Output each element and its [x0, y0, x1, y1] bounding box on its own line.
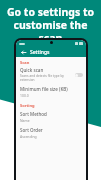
staticText: Minimum file size (KB) — [20, 86, 68, 92]
staticText: Ascending — [20, 134, 37, 139]
button[interactable]: Back — [19, 48, 27, 56]
button[interactable]: Minimum file size (KB) — [16, 84, 86, 100]
staticText: Sort Order — [20, 127, 43, 133]
staticText: Settings — [30, 49, 50, 56]
staticText: Sorting — [20, 103, 35, 108]
staticText: Go to settings to customise the scan — [5, 5, 96, 45]
button[interactable]: Quick scan toggle — [75, 73, 83, 77]
staticText: Sort Method — [20, 111, 47, 117]
button[interactable]: Quick scan — [16, 66, 86, 84]
staticText: Name — [20, 118, 30, 123]
button[interactable]: Sort Method — [16, 109, 86, 125]
staticText: Quick scan — [20, 67, 44, 73]
staticText: 100.0 — [20, 93, 29, 98]
staticText: Scan — [20, 60, 30, 65]
button[interactable]: Sort Order — [16, 125, 86, 141]
staticText: Scans and detects file type by extension — [20, 74, 73, 82]
